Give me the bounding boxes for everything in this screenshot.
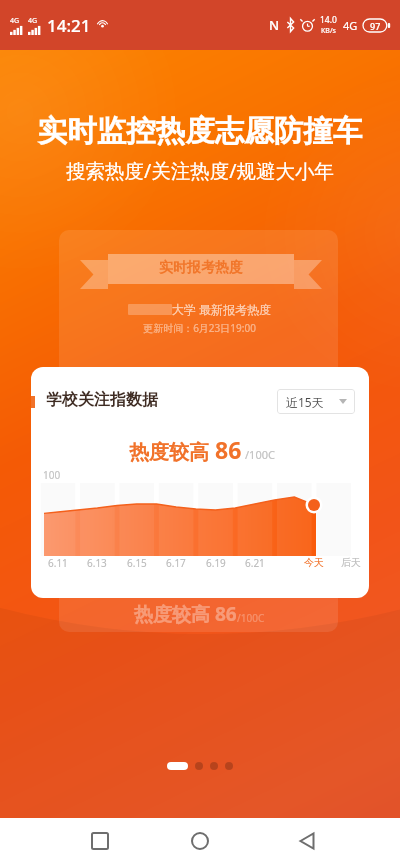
staticText: 14.0 (320, 14, 337, 26)
staticText: 6.11 (48, 556, 68, 570)
staticText: 6.17 (166, 556, 186, 570)
staticText: 搜索热度/关注热度/规避大小年 (0, 157, 400, 184)
staticText: 6.21 (245, 556, 265, 570)
button[interactable]: 近15天 (277, 389, 355, 414)
staticText: /100C (245, 447, 275, 462)
button[interactable]: Home (177, 818, 223, 864)
staticText: 热度较高 86 (134, 601, 237, 627)
button[interactable]: Recent apps (77, 818, 123, 864)
staticText: 大学 最新报考热度 (172, 301, 272, 317)
staticText: 4G (28, 16, 38, 26)
staticText: KB/s (321, 26, 336, 36)
staticText: 4G (343, 18, 358, 33)
staticText: 更新时间：6月23日19:00 (62, 321, 337, 335)
staticText: 实时监控热度志愿防撞车 (0, 113, 400, 150)
staticText: 热度较高 (129, 438, 215, 465)
staticText: 97 (370, 20, 381, 32)
button[interactable]: Back (284, 818, 330, 864)
staticText: N (269, 16, 280, 34)
staticText: 今天 (304, 556, 324, 569)
staticText: 14:21 (47, 14, 91, 37)
staticText: 4G (10, 16, 20, 26)
staticText: 86 (215, 434, 242, 465)
staticText: 近15天 (286, 394, 324, 410)
staticText: 学校关注指数据 (46, 390, 158, 410)
staticText: 6.19 (206, 556, 226, 570)
staticText: 100 (43, 468, 61, 482)
staticText: 后天 (341, 556, 361, 569)
staticText: 6.15 (127, 556, 147, 570)
staticText: 实时报考热度 (80, 259, 322, 277)
staticText: /100C (237, 611, 265, 625)
staticText: 6.13 (87, 556, 107, 570)
